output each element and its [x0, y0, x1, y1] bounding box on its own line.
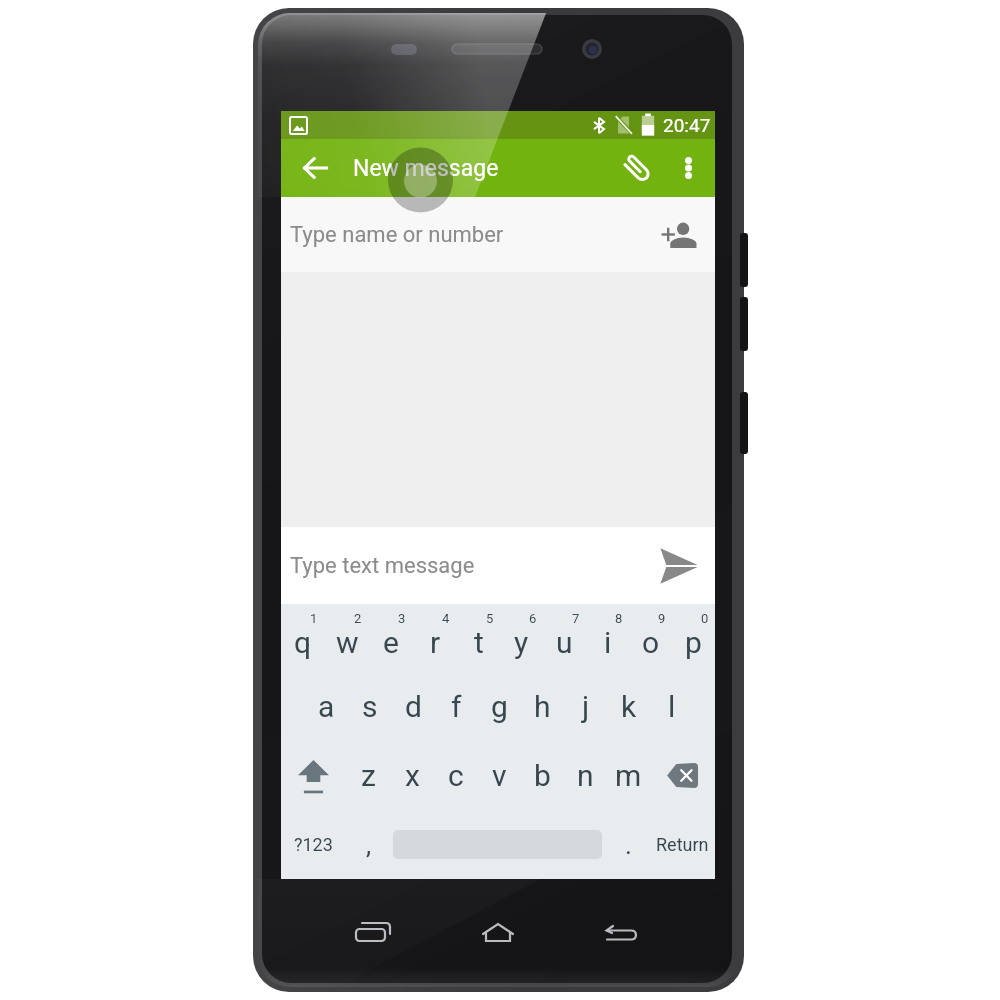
button[interactable]: Attach	[611, 139, 663, 197]
staticText: z	[361, 758, 376, 793]
button[interactable]: k	[607, 672, 650, 741]
button[interactable]: Add contact	[655, 197, 703, 272]
staticText: x	[405, 758, 420, 793]
button[interactable]: 2	[325, 604, 369, 672]
staticText: ,	[366, 830, 372, 860]
staticText: d	[405, 689, 422, 724]
staticText: i	[604, 625, 612, 660]
button[interactable]: .	[602, 810, 654, 879]
button[interactable]: 5	[457, 604, 500, 672]
staticText: 20:47	[663, 114, 711, 136]
button[interactable]: ,	[345, 810, 393, 879]
button[interactable]: 3	[369, 604, 413, 672]
staticText: e	[383, 625, 399, 660]
button[interactable]: ?123	[281, 810, 345, 879]
button[interactable]: 0	[672, 604, 715, 672]
staticText: Type text message	[290, 553, 475, 579]
staticText: 2	[354, 611, 362, 626]
staticText: p	[685, 625, 702, 660]
button[interactable]: n	[564, 741, 607, 810]
button[interactable]: 6	[500, 604, 543, 672]
staticText: 8	[615, 611, 623, 626]
button[interactable]: 4	[413, 604, 457, 672]
staticText: j	[582, 689, 590, 724]
staticText: 7	[572, 611, 580, 626]
staticText: v	[492, 758, 507, 793]
staticText: New message	[353, 155, 499, 182]
staticText: q	[294, 625, 312, 660]
button[interactable]: h	[521, 672, 564, 741]
staticText: ?123	[294, 834, 333, 855]
staticText: t	[474, 625, 484, 660]
button[interactable]: v	[478, 741, 521, 810]
button[interactable]: Shift	[281, 741, 346, 810]
staticText: r	[430, 625, 441, 660]
button[interactable]: j	[564, 672, 607, 741]
staticText: l	[668, 689, 676, 724]
button[interactable]: 7	[543, 604, 586, 672]
button[interactable]: 9	[629, 604, 672, 672]
button[interactable]: z	[346, 741, 390, 810]
staticText: Type name or number	[290, 222, 504, 248]
button[interactable]: 8	[586, 604, 629, 672]
staticText: 9	[658, 611, 666, 626]
staticText: 1	[310, 611, 318, 626]
button[interactable]: 1	[281, 604, 325, 672]
staticText: Return	[656, 834, 709, 855]
button[interactable]: Type name or number	[281, 197, 715, 272]
staticText: c	[448, 758, 464, 793]
button[interactable]	[393, 810, 602, 879]
button[interactable]: Type text message	[281, 527, 715, 604]
staticText: 0	[701, 611, 709, 626]
button[interactable]: Send	[656, 543, 702, 589]
button[interactable]: l	[650, 672, 693, 741]
staticText: 6	[529, 611, 537, 626]
button[interactable]: x	[390, 741, 434, 810]
staticText: u	[556, 625, 573, 660]
staticText: .	[625, 830, 632, 860]
button[interactable]: a	[304, 672, 348, 741]
staticText: n	[577, 758, 594, 793]
staticText: 3	[398, 611, 406, 626]
button[interactable]: Back	[287, 139, 343, 197]
button[interactable]: d	[392, 672, 435, 741]
staticText: y	[514, 625, 529, 660]
staticText: h	[534, 689, 551, 724]
button[interactable]: c	[434, 741, 478, 810]
staticText: m	[615, 758, 642, 793]
staticText: f	[451, 689, 462, 724]
staticText: g	[491, 689, 508, 724]
button[interactable]: b	[521, 741, 564, 810]
button[interactable]: Backspace	[650, 741, 715, 810]
staticText: 4	[442, 611, 450, 626]
staticText: o	[642, 625, 660, 660]
button[interactable]: More options	[666, 139, 710, 197]
button[interactable]: g	[478, 672, 521, 741]
staticText: w	[336, 625, 359, 660]
staticText: a	[318, 689, 335, 724]
button[interactable]: s	[348, 672, 392, 741]
staticText: 5	[486, 611, 494, 626]
button[interactable]: m	[607, 741, 650, 810]
staticText: k	[621, 689, 637, 724]
staticText: s	[362, 689, 378, 724]
staticText: b	[534, 758, 551, 793]
button[interactable]: f	[435, 672, 478, 741]
button[interactable]: Return	[637, 810, 727, 879]
